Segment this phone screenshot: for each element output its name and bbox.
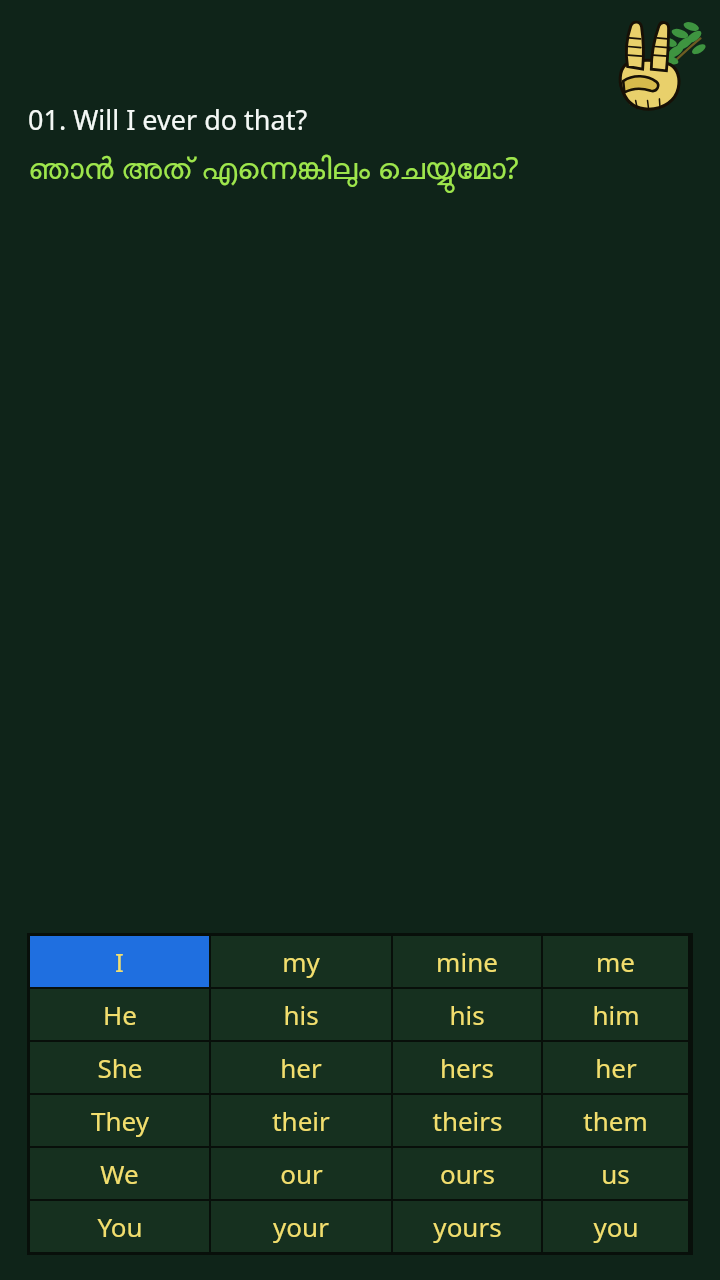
button[interactable]: mine bbox=[393, 936, 541, 987]
staticText: her bbox=[595, 1050, 637, 1085]
button[interactable]: my bbox=[211, 936, 391, 987]
staticText: them bbox=[583, 1103, 648, 1138]
staticText: I bbox=[115, 944, 124, 979]
button[interactable]: your bbox=[211, 1201, 391, 1252]
staticText: their bbox=[272, 1103, 330, 1138]
button[interactable]: theirs bbox=[393, 1095, 541, 1146]
staticText: hers bbox=[440, 1050, 494, 1085]
staticText: They bbox=[91, 1103, 149, 1138]
staticText: She bbox=[97, 1050, 143, 1085]
staticText: ഞാൻ അത് എന്നെങ്കിലും ചെയ്യുമോ? bbox=[28, 147, 519, 188]
staticText: his bbox=[283, 997, 319, 1032]
staticText: yours bbox=[433, 1209, 502, 1244]
staticText: her bbox=[280, 1050, 322, 1085]
staticText: You bbox=[97, 1209, 143, 1244]
staticText: his bbox=[449, 997, 485, 1032]
button[interactable]: her bbox=[543, 1042, 688, 1093]
staticText: your bbox=[273, 1209, 329, 1244]
button[interactable]: her bbox=[211, 1042, 391, 1093]
button[interactable]: their bbox=[211, 1095, 391, 1146]
button[interactable]: you bbox=[543, 1201, 688, 1252]
button[interactable]: me bbox=[543, 936, 688, 987]
staticText: mine bbox=[436, 944, 498, 979]
button[interactable]: them bbox=[543, 1095, 688, 1146]
staticText: our bbox=[280, 1156, 323, 1191]
staticText: him bbox=[592, 997, 640, 1032]
staticText: theirs bbox=[432, 1103, 503, 1138]
staticText: We bbox=[100, 1156, 139, 1191]
button[interactable]: ours bbox=[393, 1148, 541, 1199]
button[interactable]: his bbox=[211, 989, 391, 1040]
button[interactable]: yours bbox=[393, 1201, 541, 1252]
staticText: my bbox=[282, 944, 320, 979]
button[interactable]: us bbox=[543, 1148, 688, 1199]
button[interactable]: hers bbox=[393, 1042, 541, 1093]
staticText: us bbox=[601, 1156, 630, 1191]
button[interactable]: I bbox=[30, 936, 209, 987]
button[interactable]: You bbox=[30, 1201, 209, 1252]
staticText: 01. Will I ever do that? bbox=[28, 101, 308, 138]
button[interactable]: She bbox=[30, 1042, 209, 1093]
button[interactable]: Peace logo bbox=[600, 6, 708, 114]
staticText: you bbox=[593, 1209, 639, 1244]
staticText: ours bbox=[440, 1156, 495, 1191]
staticText: me bbox=[596, 944, 635, 979]
staticText: He bbox=[103, 997, 137, 1032]
button[interactable]: They bbox=[30, 1095, 209, 1146]
button[interactable]: We bbox=[30, 1148, 209, 1199]
button[interactable]: his bbox=[393, 989, 541, 1040]
button[interactable]: him bbox=[543, 989, 688, 1040]
button[interactable]: our bbox=[211, 1148, 391, 1199]
button[interactable]: He bbox=[30, 989, 209, 1040]
